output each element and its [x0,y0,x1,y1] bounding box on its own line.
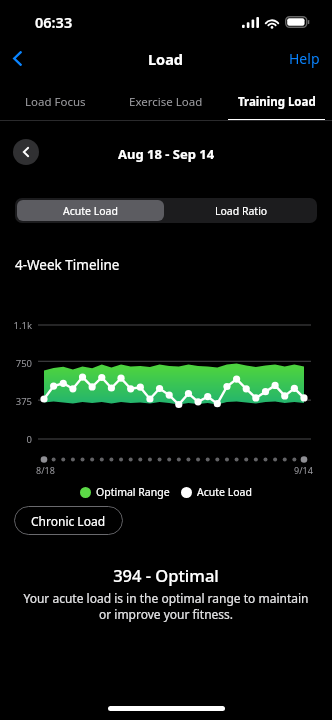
button[interactable]: Load Focus [0,83,110,121]
staticText: Load Ratio [215,204,268,218]
button[interactable]: Exercise Load [110,83,221,121]
button[interactable]: Acute Load [17,200,164,221]
staticText: Aug 18 - Sep 14 [118,145,215,163]
staticText: Chronic Load [31,513,106,529]
button[interactable]: Back [0,41,34,75]
staticText: Acute Load [63,204,118,218]
staticText: Exercise Load [129,94,203,110]
staticText: Load Focus [25,94,86,110]
staticText: Load [148,49,184,69]
button[interactable]: Load Ratio [166,198,317,223]
staticText: Acute Load [197,485,252,499]
staticText: 750 [0,357,32,370]
staticText: 375 [0,395,32,408]
staticText: Training Load [238,94,316,110]
staticText: 9/14 [294,464,313,476]
staticText: Optimal Range [96,485,170,499]
staticText: Your acute load is in the optimal range … [20,590,312,622]
staticText: 1.1k [0,319,32,332]
staticText: 06:33 [35,12,73,32]
staticText: 8/18 [36,464,55,476]
button[interactable]: Training Load [221,83,332,121]
staticText: 0 [0,433,32,446]
button[interactable]: Chronic Load [14,506,123,535]
button[interactable]: Previous period [13,139,39,165]
button[interactable]: Help [274,41,332,76]
staticText: 4-Week Timeline [15,256,120,274]
staticText: 394 - Optimal [0,564,332,586]
staticText: Help [289,49,320,68]
